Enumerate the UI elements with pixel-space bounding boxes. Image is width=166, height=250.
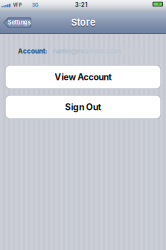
staticText: 3:21 — [75, 2, 87, 8]
button[interactable]: Settings — [3, 17, 31, 28]
button[interactable]: View Account — [5, 65, 161, 89]
staticText: Store — [71, 18, 95, 29]
staticText: Settings — [8, 19, 31, 26]
staticText: VF P — [13, 3, 22, 8]
button[interactable]: Sign Out — [5, 95, 161, 119]
staticText: 3G — [32, 2, 38, 8]
staticText: Account: — [18, 47, 47, 55]
staticText: Store — [71, 17, 95, 28]
staticText: View Account — [54, 72, 111, 82]
staticText: name@example.com — [53, 47, 121, 55]
staticText: Sign Out — [65, 102, 101, 112]
